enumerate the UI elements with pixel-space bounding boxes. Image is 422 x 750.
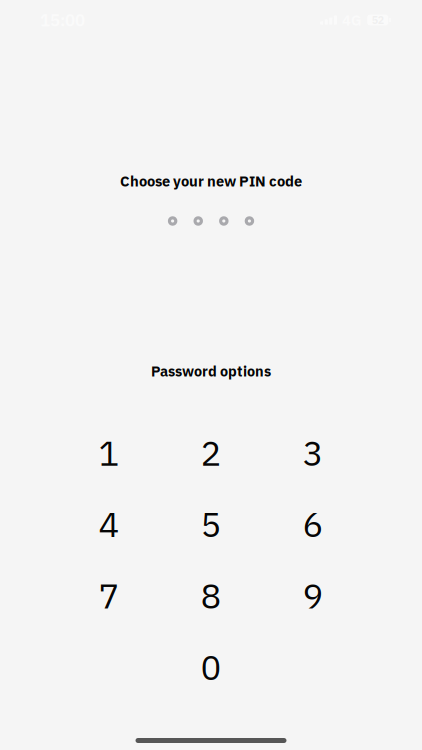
button[interactable]: 0 [160, 631, 262, 703]
staticText: 5 [200, 502, 221, 547]
staticText: 0 [200, 644, 221, 689]
button[interactable]: 1 [58, 417, 160, 488]
button[interactable]: 8 [160, 560, 262, 631]
button[interactable]: 9 [262, 560, 364, 631]
button[interactable]: Password options [131, 364, 291, 378]
staticText: 8 [200, 573, 221, 618]
staticText: Password options [151, 362, 271, 380]
button[interactable]: 4 [58, 488, 160, 560]
button[interactable]: 2 [160, 417, 262, 488]
staticText: Choose your new PIN code [120, 171, 302, 191]
button[interactable]: 5 [160, 488, 262, 560]
staticText: 52 [372, 13, 384, 27]
staticText: 7 [98, 573, 119, 618]
button[interactable]: 7 [58, 560, 160, 631]
staticText: 2 [200, 430, 221, 475]
staticText: 6 [302, 502, 323, 547]
button[interactable]: 6 [262, 488, 364, 560]
button[interactable]: 3 [262, 417, 364, 488]
staticText: 4 [98, 502, 119, 547]
staticText: 9 [302, 573, 323, 618]
staticText: 3 [302, 430, 323, 475]
staticText: 1 [98, 430, 119, 475]
